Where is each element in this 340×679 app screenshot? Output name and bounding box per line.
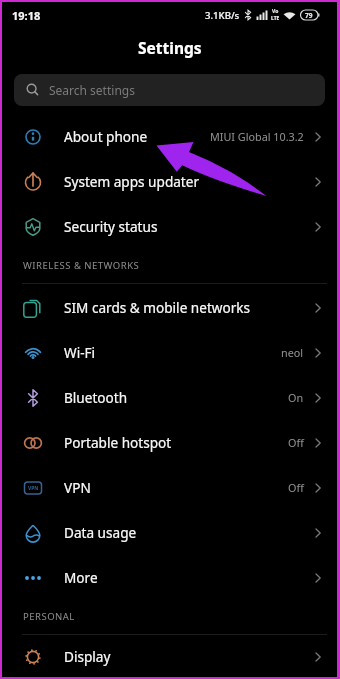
staticText: LTE [271, 15, 280, 22]
staticText: Off [288, 435, 304, 450]
button[interactable]: Security status [2, 204, 337, 249]
staticText: SIM cards & mobile networks [64, 298, 251, 317]
staticText: Off [288, 480, 304, 495]
staticText: 19:18 [12, 8, 41, 23]
staticText: Settings [138, 37, 202, 58]
staticText: Bluetooth [64, 388, 128, 407]
staticText: PERSONAL [23, 610, 75, 623]
button[interactable]: Display [2, 636, 337, 677]
button[interactable]: SIM cards & mobile networks [2, 285, 337, 330]
staticText: VPN [28, 485, 39, 492]
staticText: Portable hotspot [64, 433, 172, 452]
staticText: neol [281, 345, 304, 360]
staticText: Search settings [49, 82, 135, 98]
button[interactable]: Bluetooth [2, 375, 337, 420]
staticText: 3.1KB/s [205, 9, 240, 22]
button[interactable]: Search settings [14, 74, 325, 106]
staticText: On [288, 390, 304, 405]
staticText: Data usage [64, 523, 137, 542]
staticText: More [64, 568, 98, 587]
staticText: System apps updater [64, 172, 200, 191]
staticText: 79 [305, 11, 313, 20]
button[interactable]: VPN [2, 465, 337, 510]
staticText: Display [64, 647, 111, 666]
staticText: Security status [64, 217, 158, 236]
staticText: Wi-Fi [64, 343, 96, 362]
staticText: About phone [64, 127, 148, 146]
button[interactable]: Portable hotspot [2, 420, 337, 465]
button[interactable]: Data usage [2, 510, 337, 555]
staticText: Vo [272, 8, 279, 15]
button[interactable]: More [2, 555, 337, 600]
button[interactable]: System apps updater [2, 159, 337, 204]
button[interactable]: Wi-Fi [2, 330, 337, 375]
staticText: WIRELESS & NETWORKS [23, 259, 140, 272]
staticText: MIUI Global 10.3.2 [210, 129, 304, 144]
button[interactable]: About phone [2, 114, 337, 159]
staticText: VPN [64, 478, 91, 497]
